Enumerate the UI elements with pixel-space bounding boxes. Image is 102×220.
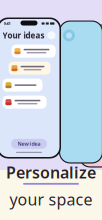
staticText: New idea [17, 140, 40, 147]
staticText: Your ideas [2, 30, 44, 41]
staticText: your space [9, 189, 92, 210]
staticText: Personalize [6, 162, 96, 183]
staticText: 9:41 [3, 21, 10, 26]
